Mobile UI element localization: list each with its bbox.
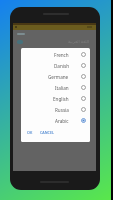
button[interactable]: Italian (21, 82, 90, 93)
staticText: Russia (55, 107, 69, 113)
button[interactable]: French (21, 49, 90, 60)
staticText: OK (27, 130, 33, 135)
staticText: Germane (48, 74, 69, 80)
other: Selected (81, 118, 86, 123)
staticText: Arabic (55, 118, 69, 124)
staticText: French (54, 52, 69, 58)
other: Not selected (81, 63, 86, 68)
button[interactable]: English (21, 93, 90, 104)
staticText: English (53, 96, 69, 102)
other: Not selected (81, 107, 86, 112)
staticText: CANCEL (40, 130, 54, 135)
other: Not selected (81, 96, 86, 101)
button[interactable]: Russia (21, 104, 90, 115)
button[interactable]: OK (26, 129, 34, 136)
staticText: Italian (55, 85, 69, 91)
button[interactable]: Germane (21, 71, 90, 82)
button[interactable] (13, 25, 96, 30)
other: Not selected (81, 52, 86, 57)
button[interactable]: CANCEL (39, 129, 55, 136)
button[interactable]: Arabic (21, 115, 90, 126)
button[interactable]: Danish (21, 60, 90, 71)
button[interactable] (13, 30, 96, 37)
other: Not selected (81, 85, 86, 90)
other: Not selected (81, 74, 86, 79)
staticText: Danish (54, 63, 69, 69)
staticText: اللغة العربية (68, 38, 90, 44)
button[interactable]: اللغة العربية (13, 37, 96, 46)
